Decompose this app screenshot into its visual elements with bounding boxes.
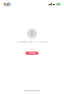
- staticText: Retry: [28, 51, 35, 55]
- button[interactable]: Retry: [25, 51, 38, 55]
- staticText: 9:41: [3, 1, 10, 7]
- staticText: CONNECTING TO DEVICE: [16, 40, 47, 43]
